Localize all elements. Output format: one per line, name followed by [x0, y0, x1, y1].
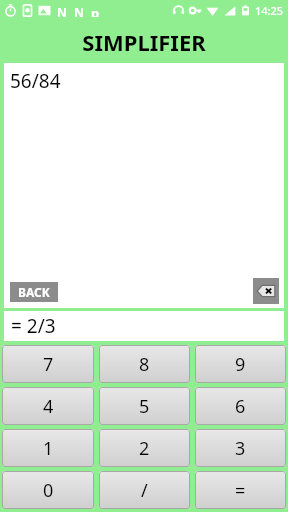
button[interactable]: 8	[99, 345, 190, 383]
staticText: 1	[43, 436, 54, 461]
button[interactable]: BACK	[10, 282, 58, 302]
other: Battery	[240, 5, 251, 16]
staticText: 2	[139, 436, 150, 461]
staticText: 6	[235, 394, 246, 419]
staticText: 4	[43, 394, 54, 419]
staticText: p	[91, 4, 100, 17]
staticText: N	[57, 4, 67, 17]
other: Signal	[223, 4, 236, 17]
staticText: BACK	[18, 284, 50, 300]
staticText: 5	[139, 394, 150, 419]
button[interactable]: 9	[195, 345, 286, 383]
button[interactable]: 7	[2, 345, 94, 383]
staticText: SIMPLIFIER	[82, 27, 206, 57]
button[interactable]: 0	[2, 471, 94, 509]
other: Timer	[4, 4, 17, 17]
button[interactable]: Backspace	[253, 278, 279, 304]
staticText: =	[235, 478, 246, 503]
staticText: 7	[43, 352, 54, 377]
staticText: 9	[235, 352, 246, 377]
button[interactable]: 1	[2, 429, 94, 467]
other: Wi-Fi	[206, 4, 219, 17]
button[interactable]: 3	[195, 429, 286, 467]
staticText: 8	[139, 352, 150, 377]
button[interactable]: 2	[99, 429, 190, 467]
staticText: 0	[43, 478, 54, 503]
staticText: N	[74, 4, 84, 17]
staticText: = 2/3	[11, 313, 56, 339]
button[interactable]: 5	[99, 387, 190, 425]
button[interactable]: 6	[195, 387, 286, 425]
other: Phone	[21, 4, 34, 17]
button[interactable]: /	[99, 471, 190, 509]
staticText: 3	[235, 436, 246, 461]
other: VPN	[189, 4, 202, 17]
staticText: 56/84	[10, 68, 61, 94]
staticText: /	[141, 478, 148, 503]
other: Screenshot	[38, 4, 51, 17]
staticText: 14:25	[255, 3, 284, 18]
button[interactable]: =	[195, 471, 286, 509]
other: Headphones	[172, 4, 185, 17]
button[interactable]: 4	[2, 387, 94, 425]
